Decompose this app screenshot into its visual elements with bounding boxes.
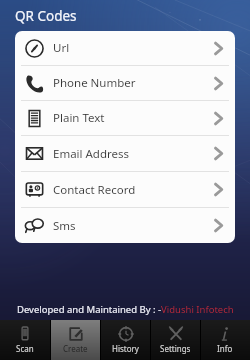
button[interactable]: Url (15, 31, 235, 65)
staticText: Email Address (53, 146, 201, 162)
staticText: Sms (53, 218, 201, 234)
staticText: Contact Record (53, 182, 201, 198)
staticText: QR Codes (15, 7, 77, 25)
staticText: Create (63, 343, 88, 354)
staticText: Info (217, 343, 233, 354)
button[interactable]: Scan (0, 320, 50, 360)
staticText: Url (53, 40, 201, 56)
button[interactable]: Settings (150, 320, 200, 360)
staticText: History (112, 343, 139, 354)
button[interactable]: Info (200, 320, 250, 360)
staticText: Developed and Maintained By : -Vidushi I… (17, 303, 234, 316)
button[interactable]: History (100, 320, 150, 360)
staticText: Phone Number (53, 75, 201, 91)
staticText: Scan (16, 343, 34, 354)
button[interactable]: Email Address (15, 136, 235, 171)
button[interactable]: Sms (15, 208, 235, 243)
staticText: Plain Text (53, 110, 201, 126)
button[interactable]: Contact Record (15, 172, 235, 207)
button[interactable]: Phone Number (15, 66, 235, 100)
button[interactable]: Create (50, 320, 100, 360)
button[interactable]: Plain Text (15, 101, 235, 135)
staticText: Settings (160, 343, 191, 354)
